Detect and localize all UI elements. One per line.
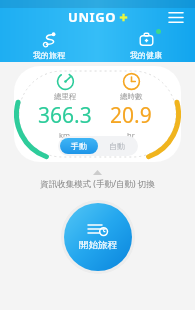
button[interactable]: 自動 (98, 138, 136, 154)
staticText: 總里程 (54, 92, 77, 101)
staticText: 自動 (109, 141, 125, 151)
staticText: km (59, 130, 71, 140)
staticText: 20.9 (110, 101, 152, 130)
button[interactable]: 總里程 (14, 66, 181, 162)
staticText: 我的健康 (130, 50, 162, 60)
staticText: 開始旅程 (79, 239, 117, 251)
staticText: 366.3 (38, 101, 92, 130)
staticText: UNIGO (68, 8, 117, 26)
staticText: hr (127, 130, 135, 140)
staticText: 資訊收集模式 (手動/自動) 切換 (40, 178, 155, 190)
button[interactable]: Menu (165, 8, 187, 26)
button[interactable]: 手動 (60, 138, 98, 154)
staticText: 我的旅程 (33, 50, 65, 60)
staticText: 總時數 (120, 92, 143, 101)
button[interactable]: 開始旅程 (64, 203, 132, 271)
button[interactable]: 我的健康 (97, 28, 195, 62)
button[interactable]: 我的旅程 (0, 28, 97, 62)
staticText: 手動 (71, 141, 87, 151)
